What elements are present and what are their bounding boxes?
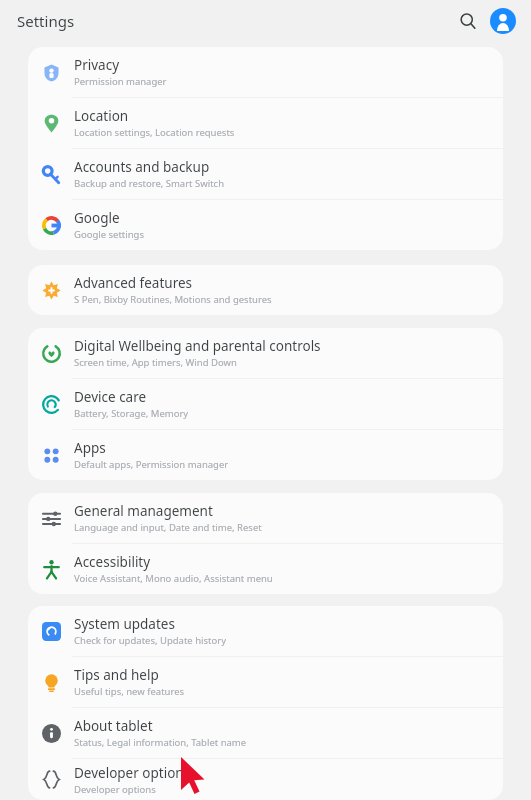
staticText: Screen time, App timers, Wind Down — [74, 356, 237, 369]
staticText: Tips and help — [74, 666, 159, 684]
button[interactable]: General management — [28, 493, 503, 543]
staticText: Accounts and backup — [74, 158, 210, 176]
button[interactable]: Account — [488, 6, 518, 36]
staticText: Backup and restore, Smart Switch — [74, 177, 225, 190]
staticText: Useful tips, new features — [74, 685, 185, 698]
staticText: Device care — [74, 388, 147, 406]
staticText: Location settings, Location requests — [74, 126, 235, 139]
staticText: General management — [74, 502, 213, 520]
button[interactable]: Developer options — [28, 759, 503, 800]
button[interactable]: Device care — [28, 379, 503, 429]
button[interactable]: Advanced features — [28, 265, 503, 315]
button[interactable]: System updates — [28, 606, 503, 656]
button[interactable]: Digital Wellbeing and parental controls — [28, 328, 503, 378]
staticText: S Pen, Bixby Routines, Motions and gestu… — [74, 293, 272, 306]
staticText: Location — [74, 107, 129, 125]
button[interactable]: Privacy — [28, 47, 503, 97]
staticText: Permission manager — [74, 75, 167, 88]
staticText: Developer options — [74, 764, 191, 782]
staticText: Advanced features — [74, 274, 193, 292]
staticText: Google — [74, 209, 120, 227]
staticText: Developer options — [74, 783, 156, 796]
staticText: Status, Legal information, Tablet name — [74, 736, 247, 749]
staticText: Battery, Storage, Memory — [74, 407, 189, 420]
staticText: Digital Wellbeing and parental controls — [74, 337, 321, 355]
button[interactable]: About tablet — [28, 708, 503, 758]
button[interactable]: Tips and help — [28, 657, 503, 707]
staticText: Check for updates, Update history — [74, 634, 227, 647]
button[interactable]: Accounts and backup — [28, 149, 503, 199]
staticText: Privacy — [74, 56, 120, 74]
staticText: Settings — [17, 11, 75, 31]
staticText: Accessibility — [74, 553, 151, 571]
staticText: About tablet — [74, 717, 153, 735]
staticText: Language and input, Date and time, Reset — [74, 521, 262, 534]
button[interactable]: Accessibility — [28, 544, 503, 594]
button[interactable]: Search — [452, 5, 484, 37]
button[interactable]: Location — [28, 98, 503, 148]
staticText: Apps — [74, 439, 106, 457]
staticText: System updates — [74, 615, 175, 633]
button[interactable]: Apps — [28, 430, 503, 480]
staticText: Default apps, Permission manager — [74, 458, 229, 471]
staticText: Voice Assistant, Mono audio, Assistant m… — [74, 572, 273, 585]
staticText: Google settings — [74, 228, 145, 241]
button[interactable]: Google — [28, 200, 503, 250]
